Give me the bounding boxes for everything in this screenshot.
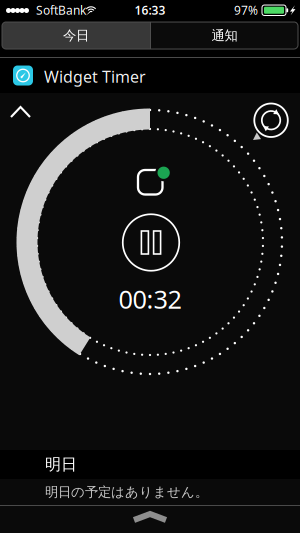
staticText: 16:33 <box>134 2 165 18</box>
staticText: 今日 <box>63 27 89 44</box>
staticText: 通知 <box>211 27 237 44</box>
button[interactable]: 通知 <box>151 22 298 49</box>
button[interactable]: Pause <box>120 211 182 273</box>
staticText: 明日の予定はありません。 <box>45 484 208 500</box>
staticText: 97% <box>234 2 258 18</box>
button[interactable]: Stop <box>137 162 171 196</box>
staticText: SoftBank <box>36 2 86 18</box>
button[interactable]: Collapse <box>0 96 41 128</box>
button[interactable]: Refresh <box>250 103 294 147</box>
staticText: 00:32 <box>118 282 181 316</box>
button[interactable]: 今日 <box>2 22 150 49</box>
staticText: 明日 <box>45 455 77 474</box>
staticText: Widget Timer <box>44 66 146 87</box>
